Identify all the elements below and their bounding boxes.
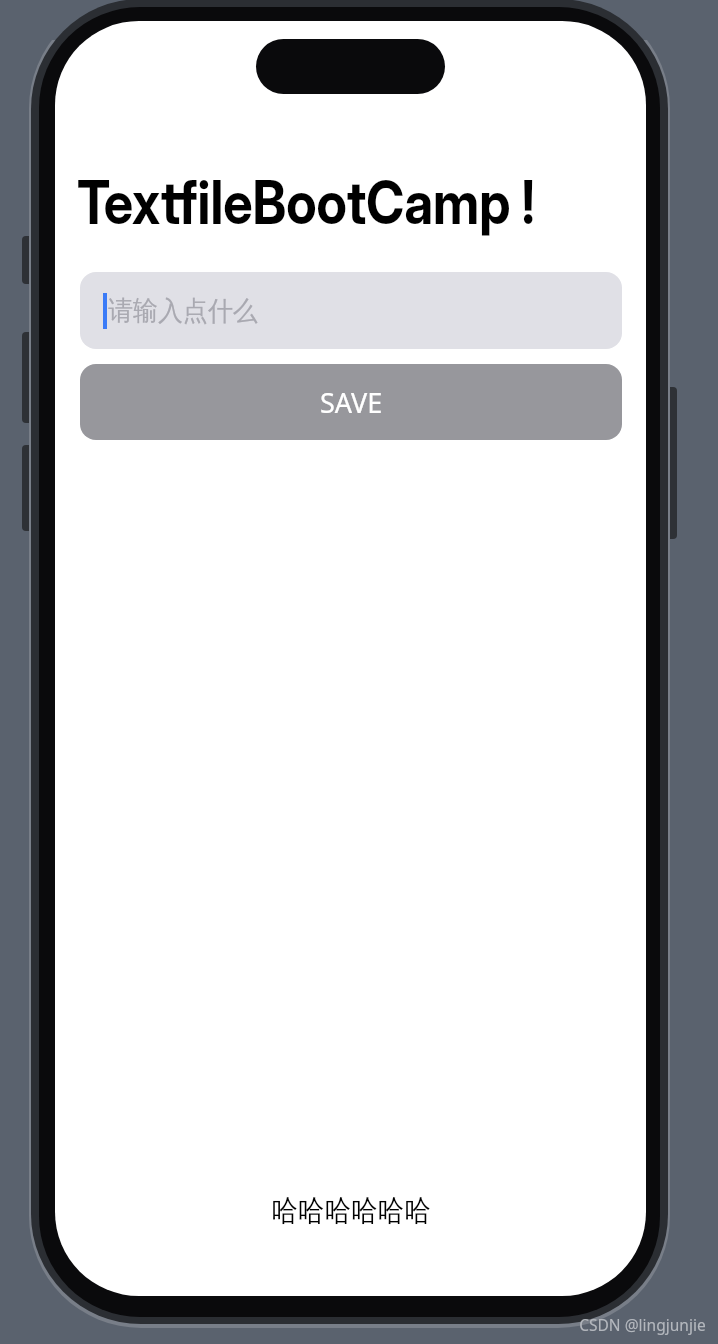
- staticText: 哈哈哈哈哈哈: [271, 1192, 431, 1230]
- staticText: CSDN @lingjunjie: [579, 1313, 706, 1336]
- staticText: 请输入点什么: [108, 294, 258, 328]
- staticText: TextfileBootCamp !: [77, 166, 535, 239]
- staticText: SAVE: [320, 384, 383, 421]
